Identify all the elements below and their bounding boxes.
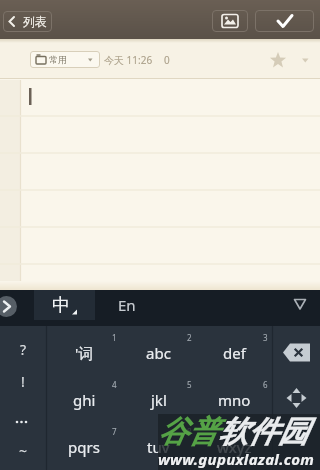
staticText: abc: [146, 343, 171, 363]
staticText: 9: [263, 426, 268, 437]
staticText: 5: [187, 379, 192, 390]
staticText: tuv: [147, 437, 170, 457]
staticText: 今天 11:26: [104, 53, 153, 67]
button[interactable]: tuv: [121, 423, 196, 470]
button[interactable]: !: [0, 369, 46, 393]
button[interactable]: ~: [0, 438, 46, 463]
button[interactable]: ?: [0, 337, 46, 361]
button[interactable]: [0, 410, 46, 434]
staticText: 6: [263, 379, 268, 390]
staticText: 常用: [49, 54, 67, 65]
staticText: jkl: [151, 390, 167, 410]
staticText: www.gupuxlazal.com: [158, 449, 315, 469]
staticText: !: [21, 372, 25, 391]
staticText: 列表: [23, 14, 47, 29]
staticText: En: [118, 295, 136, 315]
button[interactable]: [273, 329, 320, 376]
button[interactable]: En: [109, 290, 145, 320]
button[interactable]: [266, 49, 312, 71]
button[interactable]: pqrs: [47, 423, 121, 470]
button[interactable]: [212, 10, 248, 32]
staticText: 软件园: [218, 413, 308, 451]
button[interactable]: 常用: [30, 51, 100, 68]
staticText: 7: [112, 426, 117, 437]
button[interactable]: mno: [196, 376, 272, 423]
staticText: 3: [263, 332, 268, 343]
staticText: 谷普: [158, 413, 218, 451]
staticText: mno: [218, 390, 251, 410]
staticText: 0: [164, 53, 170, 67]
staticText: ?: [20, 340, 27, 359]
staticText: 2: [187, 332, 192, 343]
staticText: 8: [187, 426, 192, 437]
staticText: ~: [19, 441, 28, 460]
button[interactable]: [255, 10, 314, 32]
staticText: ghi: [73, 390, 96, 410]
button[interactable]: ghi: [47, 376, 121, 423]
button[interactable]: abc: [121, 329, 196, 376]
button[interactable]: jkl: [121, 376, 196, 423]
staticText: wxyz: [217, 437, 252, 457]
staticText: 中: [52, 294, 70, 317]
button[interactable]: [273, 376, 320, 423]
button[interactable]: def: [196, 329, 272, 376]
button[interactable]: wxyz: [196, 423, 272, 470]
staticText: '词: [75, 343, 94, 363]
button[interactable]: '词: [47, 329, 121, 376]
staticText: 4: [112, 379, 117, 390]
button[interactable]: [0, 80, 320, 290]
button[interactable]: 列表: [3, 11, 52, 32]
staticText: pqrs: [68, 437, 100, 457]
button[interactable]: 中: [34, 290, 95, 320]
staticText: def: [223, 343, 246, 363]
staticText: 1: [112, 332, 117, 343]
